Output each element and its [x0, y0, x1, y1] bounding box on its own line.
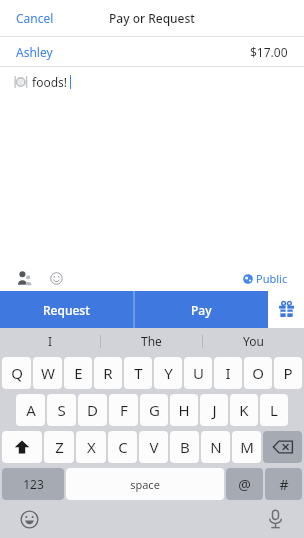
button[interactable]: K [230, 394, 258, 426]
staticText: I [225, 363, 231, 383]
staticText: A [26, 400, 36, 420]
button[interactable]: Add people [14, 268, 34, 288]
button[interactable]: Request [0, 291, 133, 328]
staticText: Q [11, 363, 23, 383]
button[interactable]: G [140, 394, 168, 426]
button[interactable]: Backspace [263, 431, 302, 463]
staticText: J [212, 400, 217, 420]
button[interactable]: O [244, 357, 272, 389]
staticText: L [270, 400, 278, 420]
button[interactable]: T [124, 357, 152, 389]
staticText: Cancel [16, 10, 54, 26]
button[interactable]: E [64, 357, 92, 389]
button[interactable]: W [33, 357, 62, 389]
button[interactable]: Ashley [0, 37, 304, 66]
staticText: foods! [32, 74, 68, 90]
staticText: S [57, 400, 66, 420]
button[interactable]: You [203, 328, 304, 354]
staticText: R [103, 363, 113, 383]
staticText: O [252, 363, 264, 383]
button[interactable]: Add emoji [46, 268, 66, 288]
staticText: Pay [191, 302, 212, 318]
staticText: G [149, 400, 160, 420]
button[interactable]: I [0, 328, 100, 354]
button[interactable]: I [214, 357, 242, 389]
button[interactable]: X [76, 431, 106, 463]
staticText: H [178, 400, 190, 420]
staticText: # [279, 475, 289, 494]
button[interactable]: Shift [2, 431, 42, 463]
button[interactable]: C [108, 431, 137, 463]
button[interactable]: Y [154, 357, 182, 389]
button[interactable]: P [274, 357, 302, 389]
staticText: Z [55, 437, 64, 457]
staticText: T [134, 363, 143, 383]
button[interactable]: 123 [2, 468, 64, 500]
button[interactable]: B [170, 431, 199, 463]
button[interactable]: R [94, 357, 122, 389]
staticText: B [180, 437, 190, 457]
staticText: V [149, 437, 159, 457]
staticText: space [130, 477, 160, 492]
staticText: I [48, 333, 53, 349]
staticText: Ashley [16, 44, 53, 60]
staticText: M [240, 437, 254, 457]
button[interactable]: S [47, 394, 76, 426]
staticText: N [210, 437, 222, 457]
button[interactable]: V [139, 431, 168, 463]
button[interactable]: Send a gift [268, 291, 304, 328]
button[interactable]: Public [241, 268, 290, 289]
button[interactable]: space [66, 468, 224, 500]
button[interactable]: # [265, 468, 302, 500]
button[interactable]: Pay [135, 291, 268, 328]
button[interactable]: foods! [14, 74, 71, 90]
staticText: K [239, 400, 249, 420]
button[interactable]: Emoji keyboard [16, 506, 42, 532]
staticText: $17.00 [250, 44, 288, 60]
staticText: 123 [23, 476, 44, 492]
button[interactable]: @ [226, 468, 263, 500]
staticText: U [193, 363, 204, 383]
staticText: Public [256, 271, 288, 286]
button[interactable]: Cancel [6, 5, 64, 31]
staticText: W [41, 363, 55, 383]
button[interactable]: Q [2, 357, 31, 389]
button[interactable]: Z [44, 431, 74, 463]
staticText: @ [238, 475, 251, 494]
button[interactable]: D [78, 394, 107, 426]
staticText: Request [43, 302, 90, 318]
staticText: Y [164, 363, 173, 383]
button[interactable]: H [170, 394, 198, 426]
staticText: C [118, 437, 128, 457]
button[interactable]: J [200, 394, 228, 426]
staticText: D [87, 400, 98, 420]
button[interactable]: N [201, 431, 230, 463]
button[interactable]: The [101, 328, 202, 354]
staticText: P [283, 363, 293, 383]
staticText: F [120, 400, 128, 420]
button[interactable]: F [109, 394, 138, 426]
staticText: Pay or Request [109, 10, 195, 26]
staticText: X [87, 437, 96, 457]
staticText: E [74, 363, 83, 383]
button[interactable]: U [184, 357, 212, 389]
button[interactable]: A [16, 394, 45, 426]
staticText: The [141, 333, 162, 349]
button[interactable]: L [260, 394, 288, 426]
button[interactable]: M [232, 431, 261, 463]
staticText: You [243, 333, 264, 349]
button[interactable]: Voice input [262, 506, 288, 532]
